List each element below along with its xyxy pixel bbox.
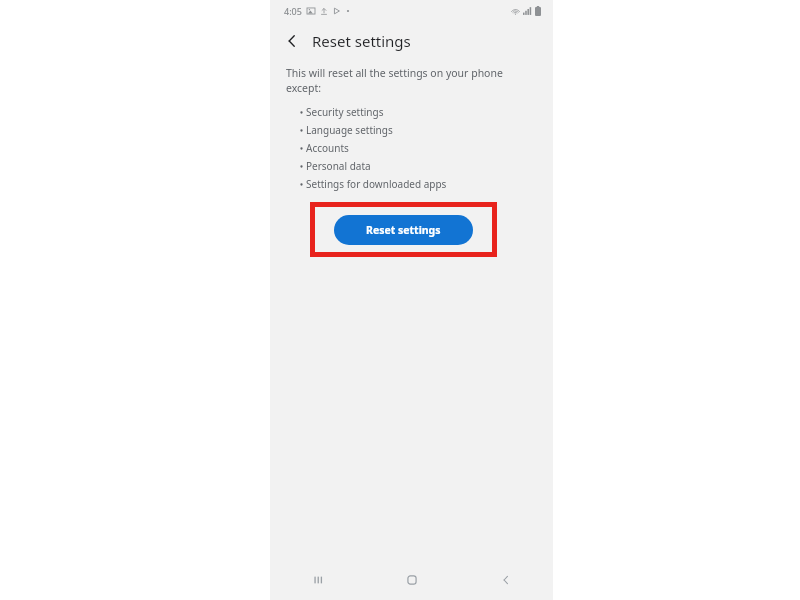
button[interactable]: Home [365,560,459,600]
button[interactable]: Back [278,27,306,55]
staticText: This will reset all the settings on your… [286,66,531,95]
staticText: Accounts [306,141,349,155]
button[interactable]: Back [459,560,553,600]
staticText: Reset settings [312,31,411,51]
staticText: 4:05 [284,5,302,17]
button[interactable]: Reset settings [334,215,473,245]
staticText: Language settings [306,123,393,137]
staticText: Personal data [306,159,371,173]
staticText: Reset settings [366,223,441,237]
staticText: Security settings [306,105,384,119]
staticText: Settings for downloaded apps [306,177,447,191]
button[interactable]: Recent apps [270,560,365,600]
